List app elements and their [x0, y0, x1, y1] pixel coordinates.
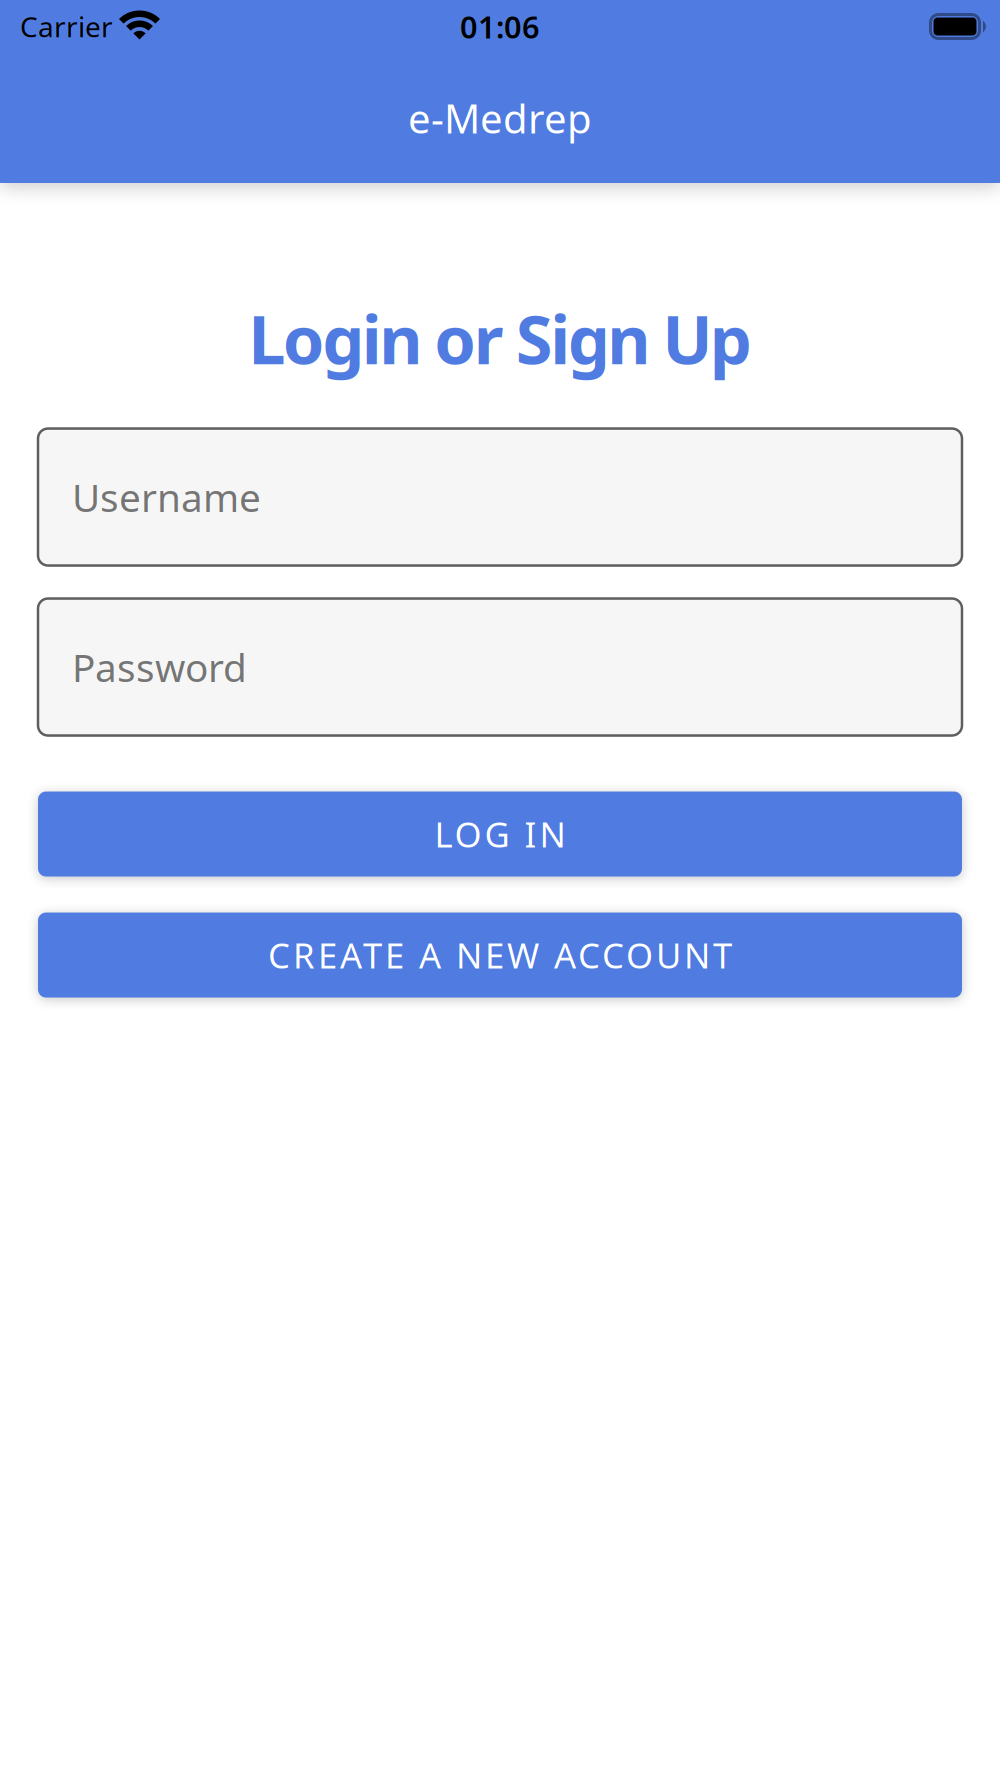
staticText: Carrier: [20, 8, 113, 45]
button[interactable]: CREATE A NEW ACCOUNT: [38, 912, 962, 997]
staticText: LOG IN: [434, 811, 565, 857]
button[interactable]: Password: [38, 598, 962, 735]
staticText: CREATE A NEW ACCOUNT: [268, 932, 732, 978]
staticText: Login or Sign Up: [248, 294, 752, 382]
staticText: 01:06: [460, 6, 540, 47]
staticText: Username: [72, 471, 261, 523]
staticText: e-Medrep: [408, 91, 592, 144]
button[interactable]: LOG IN: [38, 791, 962, 876]
staticText: Password: [72, 641, 247, 693]
button[interactable]: Username: [38, 428, 962, 565]
